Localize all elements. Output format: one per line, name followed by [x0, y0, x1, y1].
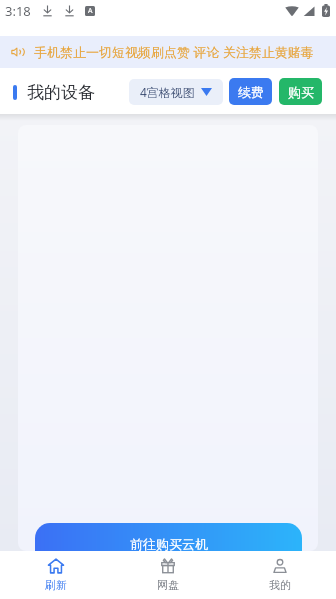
button[interactable]: 4宫格视图	[129, 79, 223, 105]
staticText: 刷新	[45, 578, 67, 592]
staticText: 我的设备	[27, 82, 95, 103]
staticText: 我的	[269, 578, 291, 592]
button[interactable]: 刷新	[0, 551, 112, 599]
button[interactable]: 购买	[279, 78, 322, 105]
staticText: 手机禁止一切短视频刷点赞 评论 关注禁止黄赌毒	[34, 43, 314, 61]
button[interactable]: 网盘	[112, 551, 224, 599]
button[interactable]: 续费	[229, 78, 272, 105]
staticText: 网盘	[157, 578, 179, 592]
button[interactable]: 前往购买云机	[35, 523, 302, 551]
staticText: 3:18	[5, 2, 31, 20]
staticText: 4宫格视图	[140, 84, 195, 100]
staticText: A	[88, 6, 93, 16]
staticText: 前往购买云机	[130, 536, 208, 551]
button[interactable]: 我的	[224, 551, 336, 599]
staticText: 续费	[238, 84, 264, 100]
staticText: 购买	[288, 84, 314, 100]
